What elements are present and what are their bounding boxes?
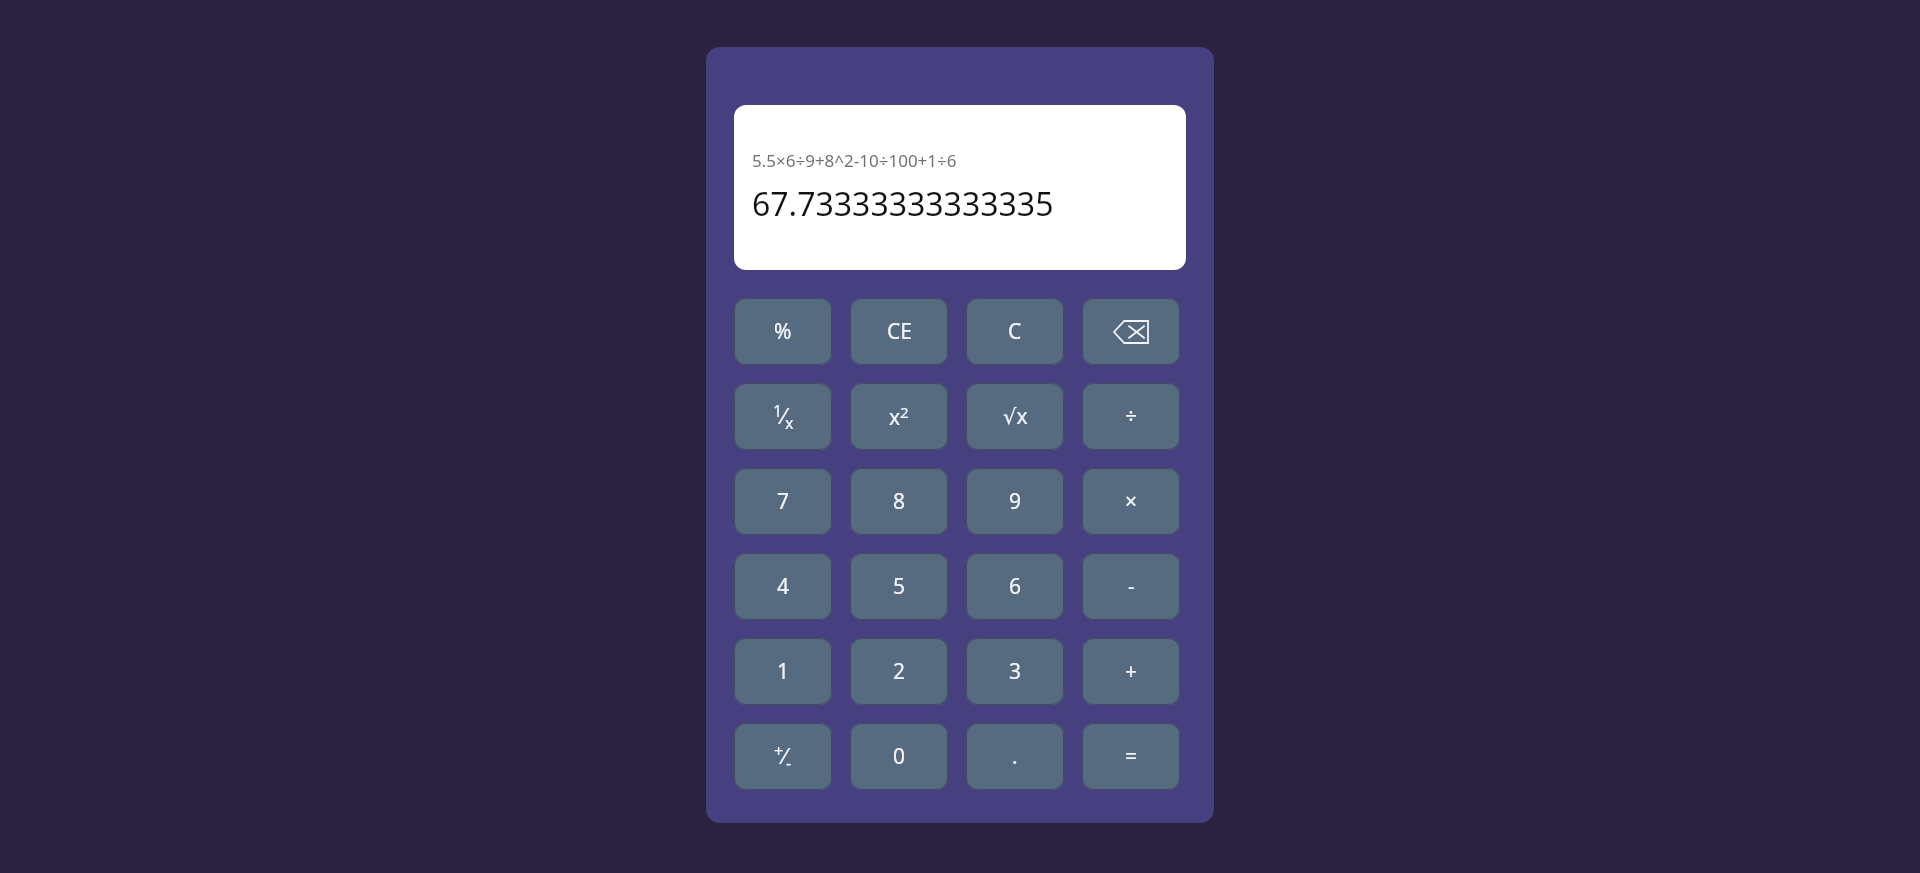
staticText: - [1128, 572, 1135, 601]
button[interactable]: 6 [966, 553, 1064, 620]
button[interactable]: . [966, 723, 1064, 790]
button[interactable]: Backspace [1082, 298, 1180, 365]
button[interactable]: 4 [734, 553, 832, 620]
staticText: 3 [1009, 657, 1022, 686]
button[interactable]: 1 [734, 638, 832, 705]
staticText: 1⁄x [773, 400, 794, 434]
button[interactable]: x squared [850, 383, 948, 450]
button[interactable]: One over x [734, 383, 832, 450]
button[interactable]: 7 [734, 468, 832, 535]
staticText: √x [1003, 402, 1028, 431]
staticText: CE [887, 317, 912, 346]
button[interactable]: 0 [850, 723, 948, 790]
staticText: × [1125, 487, 1138, 516]
staticText: + [1125, 657, 1138, 686]
button[interactable]: = [1082, 723, 1180, 790]
staticText: 9 [1009, 487, 1022, 516]
button[interactable]: ÷ [1082, 383, 1180, 450]
staticText: x2 [889, 402, 909, 431]
button[interactable]: Plus minus [734, 723, 832, 790]
staticText: 4 [777, 572, 790, 601]
button[interactable]: - [1082, 553, 1180, 620]
button[interactable]: 9 [966, 468, 1064, 535]
button[interactable]: Square root [966, 383, 1064, 450]
staticText: C [1008, 317, 1022, 346]
staticText: . [1012, 742, 1018, 771]
staticText: 67.73333333333335 [752, 182, 1054, 226]
button[interactable]: CE [850, 298, 948, 365]
staticText: 6 [1009, 572, 1022, 601]
button[interactable]: 3 [966, 638, 1064, 705]
staticText: 1 [777, 657, 790, 686]
button[interactable]: 2 [850, 638, 948, 705]
staticText: +⁄- [774, 740, 792, 774]
staticText: 0 [893, 742, 906, 771]
staticText: ÷ [1125, 402, 1138, 431]
staticText: = [1125, 742, 1138, 771]
staticText: % [774, 317, 792, 346]
button[interactable]: 5 [850, 553, 948, 620]
button[interactable]: % [734, 298, 832, 365]
staticText: 2 [893, 657, 906, 686]
staticText: 7 [777, 487, 790, 516]
button[interactable]: + [1082, 638, 1180, 705]
staticText: 5 [893, 572, 906, 601]
staticText: 8 [893, 487, 906, 516]
button[interactable]: C [966, 298, 1064, 365]
button[interactable]: × [1082, 468, 1180, 535]
button[interactable]: 8 [850, 468, 948, 535]
staticText: 5.5×6÷9+8^2-10÷100+1÷6 [752, 149, 957, 172]
